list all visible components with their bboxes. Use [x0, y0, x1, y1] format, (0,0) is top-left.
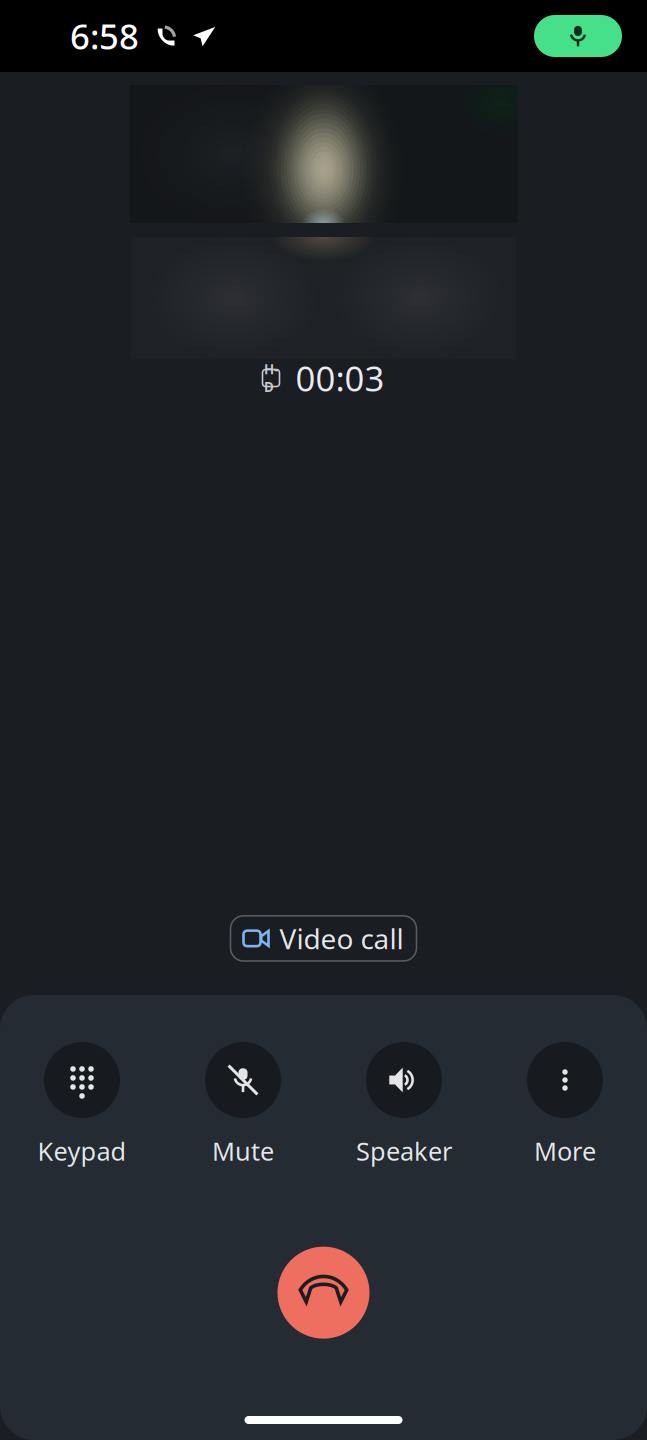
staticText: 6:58 [70, 13, 139, 59]
button[interactable]: Mute [162, 1042, 323, 1168]
staticText: Video call [279, 920, 403, 957]
staticText: Mute [212, 1134, 274, 1168]
button[interactable]: Microphone in use [534, 15, 622, 57]
staticText: Keypad [37, 1134, 126, 1168]
staticText: More [534, 1134, 596, 1168]
button[interactable]: Video call [230, 916, 416, 961]
staticText: HD [264, 360, 278, 396]
button[interactable]: More [484, 1042, 645, 1168]
button[interactable]: End call [277, 1247, 369, 1339]
staticText: 00:03 [295, 355, 384, 401]
button[interactable]: Keypad [1, 1042, 162, 1168]
staticText: Speaker [356, 1134, 452, 1168]
button[interactable]: Speaker [323, 1042, 484, 1168]
